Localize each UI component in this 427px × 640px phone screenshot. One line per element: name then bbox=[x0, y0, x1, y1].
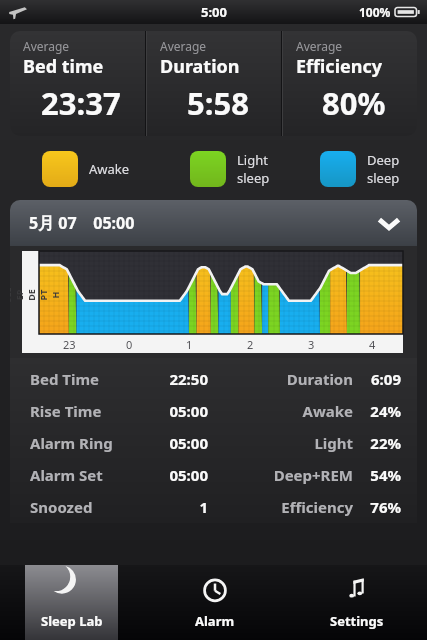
staticText: 2 bbox=[247, 337, 254, 352]
staticText: 54% bbox=[361, 465, 401, 485]
staticText: Average bbox=[23, 38, 70, 54]
staticText: Snoozed bbox=[30, 497, 134, 517]
staticText: 24% bbox=[361, 401, 401, 421]
staticText: Awake bbox=[89, 160, 130, 178]
button[interactable]: Snoozed bbox=[10, 491, 417, 523]
staticText: Light bbox=[237, 151, 268, 169]
staticText: Bed Time bbox=[30, 369, 134, 389]
button[interactable]: Alarm Ring bbox=[10, 427, 417, 459]
staticText: 23 bbox=[63, 337, 76, 352]
button[interactable]: 5月 07 05:00 bbox=[10, 200, 417, 246]
staticText: Deep+REM bbox=[208, 465, 353, 485]
button[interactable]: Bed Time bbox=[10, 363, 417, 395]
staticText: Sleep Lab bbox=[41, 612, 103, 630]
staticText: 76% bbox=[361, 497, 401, 517]
staticText: 80% bbox=[322, 82, 386, 124]
button[interactable]: Alarm bbox=[168, 565, 261, 640]
staticText: Bed time bbox=[23, 54, 104, 79]
staticText: Settings bbox=[330, 612, 384, 630]
other: Expand bbox=[377, 211, 401, 235]
button[interactable]: Average bbox=[10, 31, 417, 136]
button[interactable]: Alarm Set bbox=[10, 459, 417, 491]
staticText: Alarm bbox=[195, 612, 235, 630]
staticText: Deep bbox=[367, 151, 400, 169]
staticText: 4 bbox=[369, 337, 376, 352]
button[interactable]: Rise Time bbox=[10, 395, 417, 427]
other: Airplane mode bbox=[8, 2, 28, 22]
staticText: Rise Time bbox=[30, 401, 134, 421]
staticText: 3 bbox=[308, 337, 315, 352]
staticText: 5月 07 05:00 bbox=[29, 212, 135, 234]
staticText: 100% bbox=[359, 4, 391, 20]
staticText: Alarm Set bbox=[30, 465, 134, 485]
staticText: Average bbox=[160, 38, 207, 54]
staticText: Duration bbox=[160, 54, 240, 79]
staticText: 1 bbox=[186, 337, 193, 352]
staticText: 23:37 bbox=[41, 82, 121, 124]
staticText: Light bbox=[208, 433, 353, 453]
staticText: 0 bbox=[126, 337, 133, 352]
staticText: Average bbox=[296, 38, 343, 54]
staticText: 05:00 bbox=[134, 465, 208, 485]
staticText: 5:58 bbox=[187, 82, 249, 124]
staticText: sleep bbox=[367, 169, 400, 187]
staticText: SLEEP DEPTH bbox=[10, 286, 60, 303]
staticText: 22:50 bbox=[134, 369, 208, 389]
staticText: 05:00 bbox=[134, 401, 208, 421]
staticText: 5:00 bbox=[201, 3, 227, 21]
staticText: Alarm Ring bbox=[30, 433, 134, 453]
staticText: 1 bbox=[134, 497, 208, 517]
staticText: Efficiency bbox=[296, 54, 383, 79]
staticText: 6:09 bbox=[361, 369, 401, 389]
staticText: Efficiency bbox=[208, 497, 353, 517]
staticText: 22% bbox=[361, 433, 401, 453]
staticText: Duration bbox=[208, 369, 353, 389]
staticText: 05:00 bbox=[134, 433, 208, 453]
staticText: sleep bbox=[237, 169, 270, 187]
button[interactable]: Settings bbox=[310, 565, 403, 640]
staticText: Awake bbox=[208, 401, 353, 421]
button[interactable]: Sleep Lab bbox=[25, 565, 118, 640]
